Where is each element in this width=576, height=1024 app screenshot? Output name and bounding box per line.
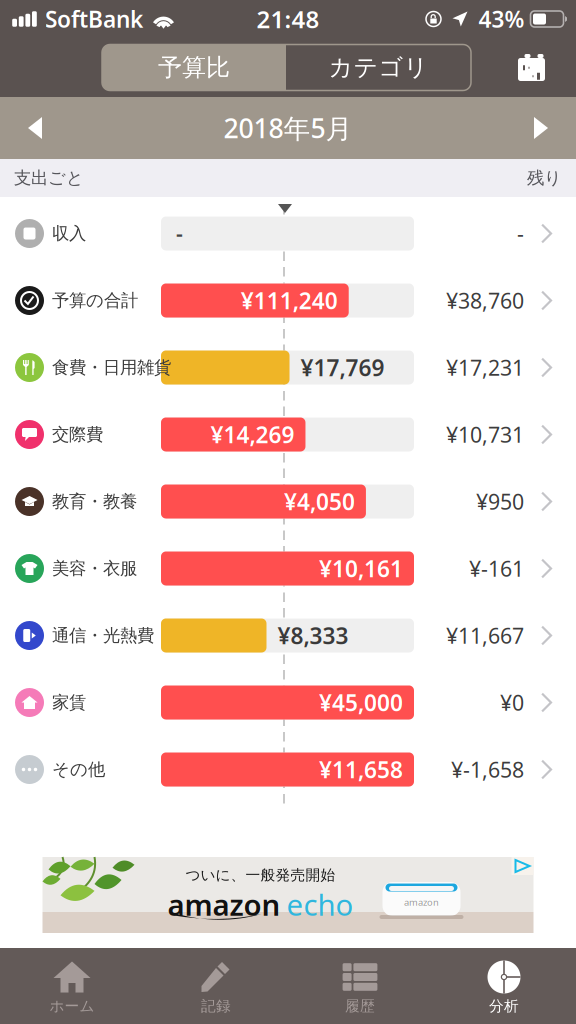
staticText: ¥10,161 — [319, 553, 403, 583]
staticText: ¥17,769 — [300, 352, 384, 382]
staticText: 履歴 — [345, 997, 375, 1015]
button[interactable]: ¥8,333 — [0, 602, 576, 669]
staticText: 通信・光熱費 — [52, 625, 154, 646]
button[interactable]: ¥111,240 — [0, 267, 576, 334]
staticText: カテゴリ — [328, 53, 428, 82]
button[interactable]: 予算比 — [102, 44, 286, 90]
staticText: その他 — [52, 759, 105, 780]
staticText: ¥4,050 — [284, 486, 355, 516]
button[interactable]: ¥45,000 — [0, 669, 576, 736]
button[interactable]: - — [0, 200, 576, 267]
staticText: 記録 — [201, 997, 231, 1015]
staticText: ¥8,333 — [277, 620, 348, 650]
button[interactable]: ¥17,769 — [0, 334, 576, 401]
staticText: 家賃 — [52, 692, 86, 713]
staticText: ¥0 — [500, 688, 524, 717]
staticText: ¥11,658 — [319, 754, 403, 784]
staticText: ホーム — [49, 997, 94, 1015]
button[interactable]: Next month — [506, 97, 576, 159]
staticText: ¥45,000 — [319, 687, 403, 717]
button[interactable]: ¥4,050 — [0, 468, 576, 535]
button[interactable]: 分析 — [432, 948, 576, 1024]
staticText: ¥-161 — [469, 554, 524, 583]
button[interactable]: Previous month — [0, 97, 70, 159]
staticText: 2018年5月 — [223, 110, 352, 146]
staticText: 分析 — [489, 997, 519, 1015]
button[interactable]: ¥10,161 — [0, 535, 576, 602]
staticText: ¥38,760 — [446, 286, 524, 315]
button[interactable]: Calendar — [506, 44, 562, 90]
button[interactable]: ¥11,658 — [0, 736, 576, 803]
staticText: ¥-1,658 — [451, 755, 524, 784]
staticText: 43% — [478, 4, 524, 34]
staticText: - — [517, 219, 524, 248]
staticText: ¥950 — [476, 487, 524, 516]
button[interactable]: 記録 — [144, 948, 288, 1024]
staticText: 予算の合計 — [52, 290, 138, 311]
staticText: 予算比 — [158, 53, 230, 82]
staticText: ¥111,240 — [241, 285, 338, 315]
staticText: 美容・衣服 — [52, 558, 137, 579]
staticText: SoftBank — [45, 4, 143, 34]
button[interactable]: Advertisement — [42, 857, 533, 933]
staticText: 21:48 — [256, 3, 319, 35]
staticText: - — [176, 219, 183, 248]
button[interactable]: ¥14,269 — [0, 401, 576, 468]
staticText: ¥10,731 — [446, 420, 524, 449]
staticText: 収入 — [52, 223, 86, 244]
staticText: 支出ごと — [14, 167, 84, 189]
staticText: amazon — [167, 885, 280, 924]
staticText: ¥14,269 — [210, 419, 294, 449]
staticText: 交際費 — [52, 424, 103, 445]
staticText: amazon — [404, 896, 439, 908]
staticText: ¥17,231 — [446, 353, 524, 382]
staticText: 食費・日用雑貨 — [52, 357, 171, 378]
button[interactable]: カテゴリ — [286, 44, 471, 90]
button[interactable]: ホーム — [0, 948, 144, 1024]
staticText: 教育・教養 — [52, 491, 137, 512]
staticText: 残り — [527, 167, 562, 189]
staticText: echo — [286, 885, 353, 924]
staticText: ¥11,667 — [446, 621, 524, 650]
button[interactable]: 履歴 — [288, 948, 432, 1024]
staticText: ついに、一般発売開始 — [185, 866, 335, 884]
